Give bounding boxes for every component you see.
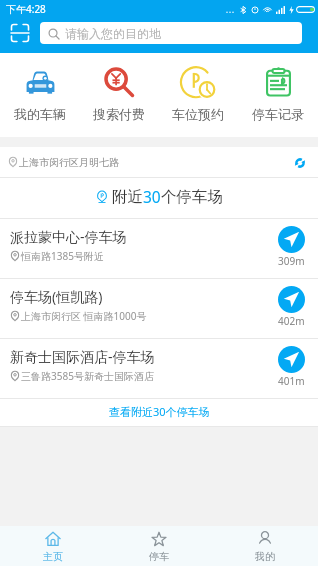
button[interactable]: 上海市闵行区月明七路 xyxy=(0,147,318,177)
staticText: 恒南路1385号附近 xyxy=(21,249,104,263)
button[interactable]: 请输入您的目的地 xyxy=(40,22,302,44)
button[interactable]: 新奇士国际酒店-停车场 xyxy=(0,339,318,398)
staticText: 个停车场 xyxy=(161,187,223,207)
staticText: 上海市闵行区月明七路 xyxy=(19,156,119,169)
staticText: 30 xyxy=(143,186,161,207)
button[interactable]: 导航 xyxy=(278,226,305,253)
staticText: 停车记录 xyxy=(252,106,304,122)
staticText: 上海市闵行区 恒南路1000号 xyxy=(21,309,147,323)
staticText: 我的车辆 xyxy=(14,106,66,122)
staticText: 附近 xyxy=(112,187,143,207)
button[interactable]: 派拉蒙中心-停车场 xyxy=(0,219,318,278)
staticText: 新奇士国际酒店-停车场 xyxy=(10,347,155,366)
button[interactable]: 停车场(恒凯路) xyxy=(0,279,318,338)
button[interactable]: 停车 xyxy=(106,526,212,563)
staticText: 309m xyxy=(278,254,305,268)
button[interactable]: 车位预约 xyxy=(158,53,238,137)
button[interactable]: 搜索付费 xyxy=(79,53,158,137)
staticText: 搜索付费 xyxy=(93,106,145,122)
staticText: 请输入您的目的地 xyxy=(65,26,161,41)
staticText: 停车场(恒凯路) xyxy=(10,287,103,306)
button[interactable]: 导航 xyxy=(278,286,305,313)
staticText: 我的 xyxy=(255,550,275,563)
button[interactable]: 我的 xyxy=(212,526,318,563)
staticText: 三鲁路3585号新奇士国际酒店 xyxy=(21,369,154,383)
staticText: 停车 xyxy=(149,550,169,563)
staticText: 主页 xyxy=(43,550,63,563)
button[interactable]: 我的车辆 xyxy=(0,53,79,137)
staticText: 车位预约 xyxy=(172,106,224,122)
button[interactable]: 查看附近30个停车场 xyxy=(0,399,318,426)
button[interactable]: 导航 xyxy=(278,346,305,373)
button[interactable]: 刷新 xyxy=(285,148,315,177)
staticText: 查看附近30个停车场 xyxy=(109,404,210,419)
staticText: 401m xyxy=(278,374,305,388)
button[interactable]: 主页 xyxy=(0,526,106,563)
button[interactable]: 扫一扫 xyxy=(0,22,40,44)
staticText: 402m xyxy=(278,314,305,328)
button[interactable]: 停车记录 xyxy=(238,53,318,137)
staticText: 下午4:28 xyxy=(6,2,46,16)
staticText: 派拉蒙中心-停车场 xyxy=(10,227,127,246)
